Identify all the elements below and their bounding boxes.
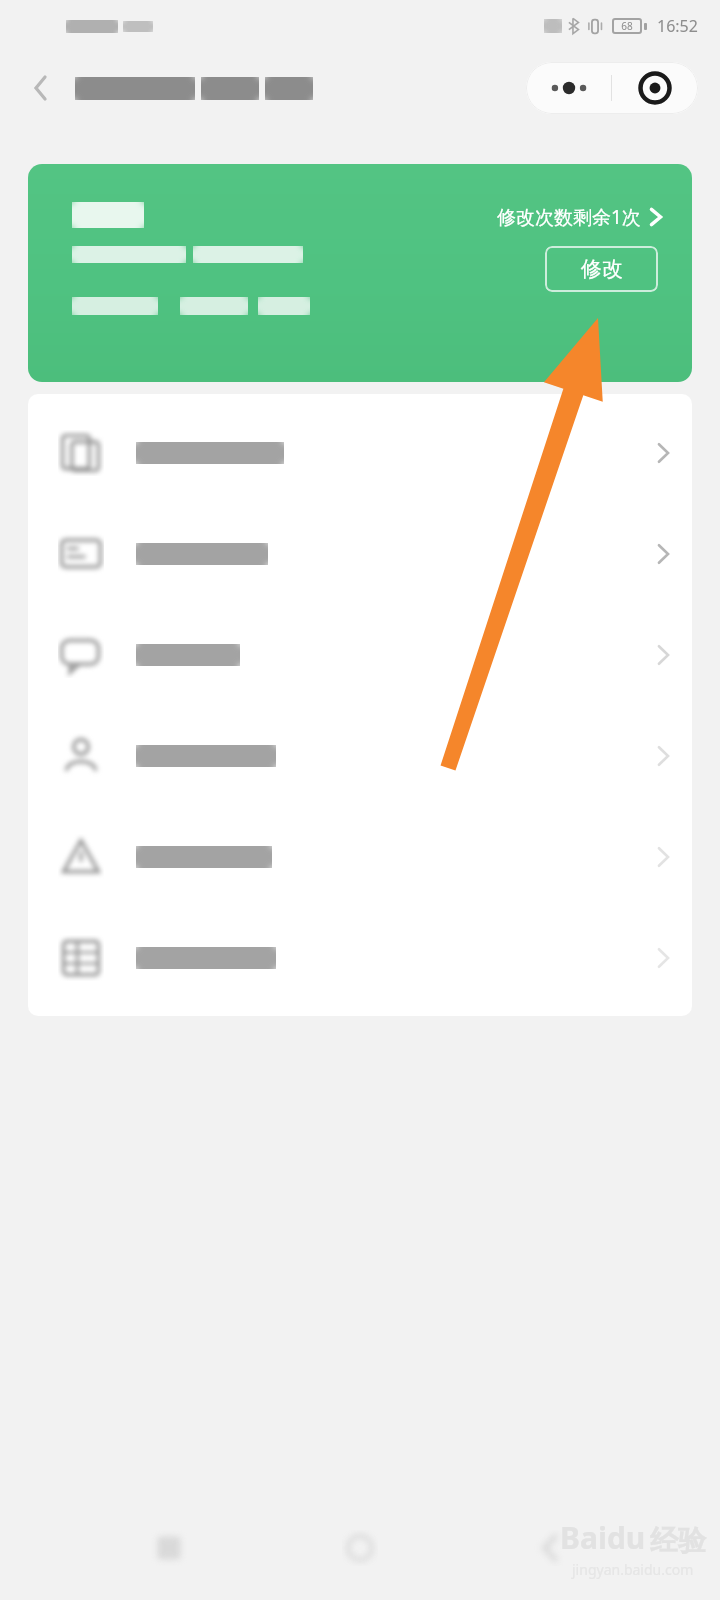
button[interactable]: 修改 [545,246,658,292]
button[interactable] [28,705,692,806]
button[interactable]: Back [18,66,62,110]
button[interactable] [28,604,692,705]
staticText: Baidu [560,1517,646,1558]
staticText: 修改次数剩余1次 [497,204,641,230]
button[interactable]: Home [331,1519,389,1577]
button[interactable]: Close mini program [612,62,698,114]
button[interactable]: Back [522,1519,580,1577]
button[interactable]: Recents [140,1519,198,1577]
button[interactable]: More [526,62,611,114]
staticText: 经验 [650,1523,706,1558]
button[interactable] [28,503,692,604]
button[interactable]: 修改次数剩余1次 [28,164,692,382]
staticText: 修改 [581,256,623,282]
button[interactable] [28,806,692,907]
button[interactable] [28,907,692,1008]
staticText: jingyan.baidu.com [572,1560,694,1579]
button[interactable]: 修改次数剩余1次 [497,204,662,230]
staticText: 16:52 [657,15,698,37]
button[interactable] [28,402,692,503]
staticText: 68 [621,19,633,33]
